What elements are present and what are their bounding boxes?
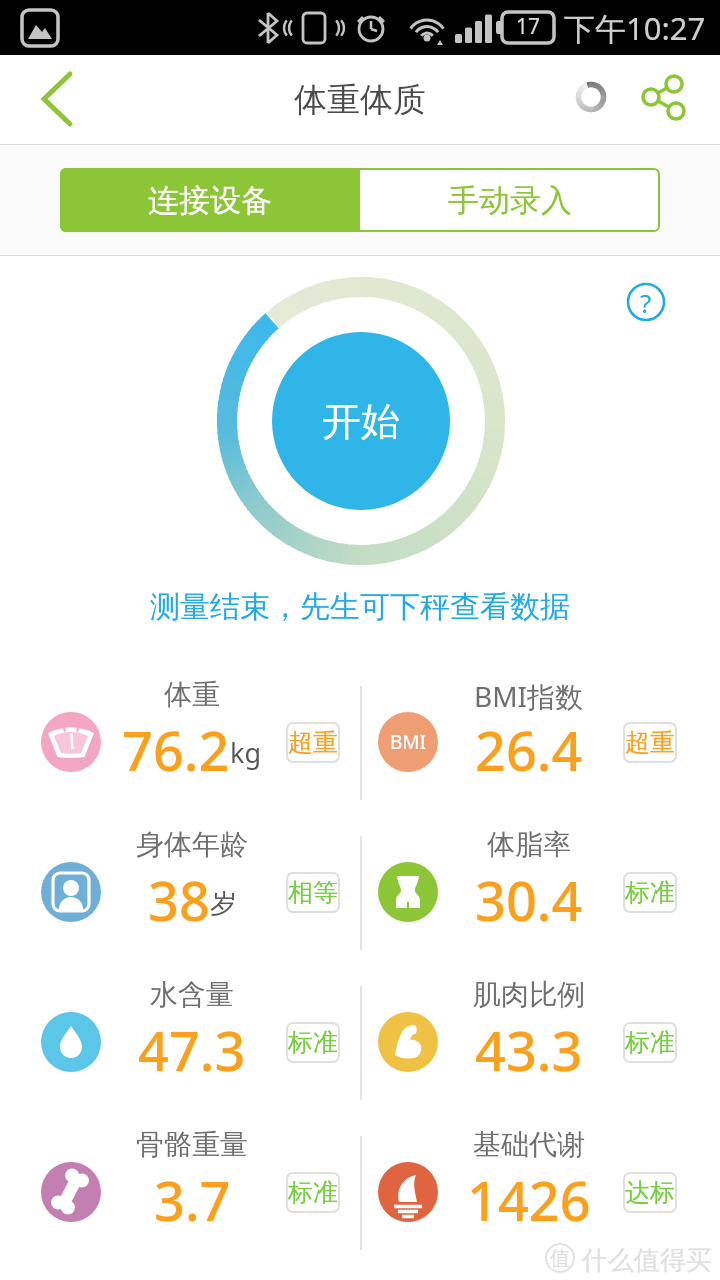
button[interactable]: 开始 — [272, 332, 450, 510]
button[interactable]: 基础代谢 — [337, 1118, 674, 1268]
staticText: 什么值得买 — [575, 1241, 712, 1275]
staticText: 47.3 — [138, 1013, 246, 1077]
staticText: 手动录入 — [448, 181, 572, 220]
staticText: BMI — [390, 729, 427, 755]
staticText: 基础代谢 — [473, 1127, 585, 1161]
button[interactable]: ? — [623, 279, 669, 325]
staticText: 岁 — [210, 887, 237, 921]
staticText: kg — [230, 734, 262, 771]
staticText: 76.2 — [122, 713, 230, 777]
staticText: 测量结束，先生可下秤查看数据 — [150, 588, 570, 626]
button[interactable] — [635, 72, 695, 127]
staticText: 标准 — [288, 1027, 338, 1058]
staticText: 17 — [502, 12, 554, 43]
staticText: 标准 — [625, 1027, 675, 1058]
staticText: 连接设备 — [148, 181, 272, 220]
button[interactable]: 身体年龄 — [0, 818, 337, 968]
staticText: 达标 — [625, 1177, 675, 1208]
staticText: 超重 — [625, 727, 675, 758]
button[interactable]: 肌肉比例 — [337, 968, 674, 1118]
button[interactable] — [10, 60, 90, 130]
staticText: 身体年龄 — [136, 827, 248, 861]
staticText: 肌肉比例 — [473, 977, 585, 1011]
staticText: 体重 — [164, 677, 220, 711]
staticText: 水含量 — [150, 977, 234, 1011]
staticText: ? — [640, 285, 652, 320]
button[interactable]: 水含量 — [0, 968, 337, 1118]
staticText: 标准 — [625, 877, 675, 908]
staticText: 43.3 — [475, 1013, 583, 1077]
staticText: 值 — [550, 1246, 570, 1271]
staticText: 1426 — [467, 1163, 591, 1227]
staticText: 38 — [148, 863, 210, 927]
staticText: 3.7 — [154, 1163, 231, 1227]
staticText: 26.4 — [475, 713, 583, 777]
button[interactable]: 体重 — [0, 668, 337, 818]
button[interactable]: 手动录入 — [360, 168, 660, 232]
staticText: 开始 — [322, 397, 400, 446]
staticText: 相等 — [288, 877, 338, 908]
staticText: BMI指数 — [474, 677, 584, 711]
staticText: 体重体质 — [294, 79, 426, 121]
button[interactable]: BMI — [337, 668, 674, 818]
staticText: 标准 — [288, 1177, 338, 1208]
staticText: 超重 — [288, 727, 338, 758]
button[interactable]: 骨骼重量 — [0, 1118, 337, 1268]
staticText: 骨骼重量 — [136, 1127, 248, 1161]
staticText: 下午10:27 — [564, 7, 706, 49]
staticText: 30.4 — [475, 863, 583, 927]
button[interactable]: 连接设备 — [60, 168, 360, 232]
staticText: 体脂率 — [487, 827, 571, 861]
button[interactable]: 体脂率 — [337, 818, 674, 968]
